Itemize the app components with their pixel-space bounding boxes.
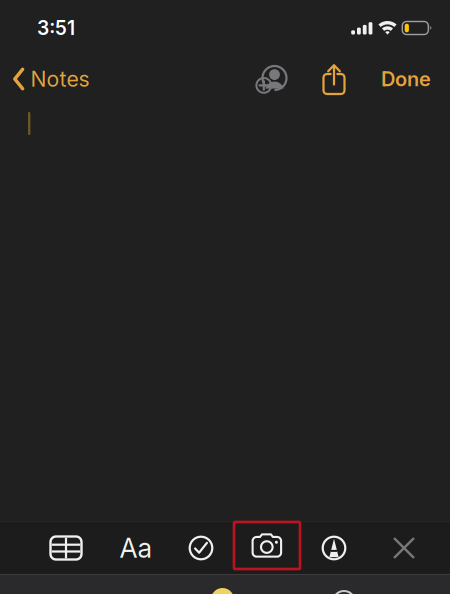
staticText: 3:51 bbox=[37, 16, 75, 40]
staticText: Done bbox=[381, 67, 431, 91]
button[interactable]: Format bbox=[107, 522, 165, 574]
staticText: Notes bbox=[30, 66, 89, 92]
button[interactable]: Notes bbox=[0, 62, 89, 96]
button[interactable]: Share bbox=[323, 63, 345, 95]
button[interactable]: Add People bbox=[256, 64, 287, 94]
staticText: Aa bbox=[119, 532, 152, 564]
button[interactable]: Done bbox=[381, 67, 450, 91]
button[interactable]: Close bbox=[375, 522, 433, 574]
button[interactable]: Checklist bbox=[172, 522, 230, 574]
button[interactable]: Markup bbox=[305, 522, 363, 574]
button[interactable]: Camera bbox=[234, 522, 300, 569]
button[interactable]: Table bbox=[37, 522, 95, 574]
